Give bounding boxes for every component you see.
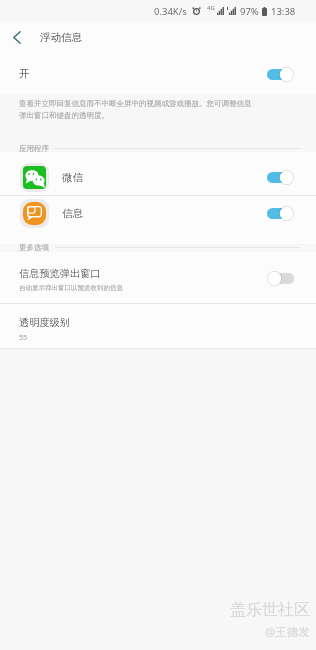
button[interactable]: 信息预览弹出窗口 <box>0 252 316 303</box>
staticText: 0.34K/s <box>154 5 187 18</box>
staticText: 13:38 <box>271 5 296 18</box>
staticText: 查看并立即回复信息而不中断全屏中的视频或游戏播放。您可调整信息弹出窗口和键盘的透… <box>19 99 252 120</box>
staticText: @王德发 <box>265 624 310 640</box>
button[interactable]: 开 <box>0 53 316 94</box>
button[interactable]: 透明度级别 <box>0 304 316 348</box>
staticText: 微信 <box>62 171 83 184</box>
staticText: 开 <box>19 67 30 80</box>
staticText: 97% <box>240 5 259 18</box>
staticText: 自动显示弹出窗口以预览收到的信息 <box>19 284 123 292</box>
staticText: 更多选项 <box>19 243 49 251</box>
staticText: 55 <box>19 333 28 343</box>
staticText: 信息预览弹出窗口 <box>19 267 101 280</box>
button[interactable]: Switch off <box>258 261 302 295</box>
button[interactable]: 微信 <box>0 152 316 195</box>
button[interactable]: 信息 <box>0 196 316 244</box>
staticText: 浮动信息 <box>40 31 82 44</box>
button[interactable]: Back <box>0 22 34 53</box>
staticText: 信息 <box>62 207 83 220</box>
button[interactable]: Switch on <box>258 57 302 91</box>
button[interactable]: Switch on <box>258 196 302 230</box>
staticText: 透明度级别 <box>19 316 70 329</box>
staticText: 应用程序 <box>19 144 49 153</box>
staticText: 盖乐世社区 <box>230 600 310 620</box>
staticText: 4G <box>207 4 215 12</box>
button[interactable]: Switch on <box>258 160 302 194</box>
